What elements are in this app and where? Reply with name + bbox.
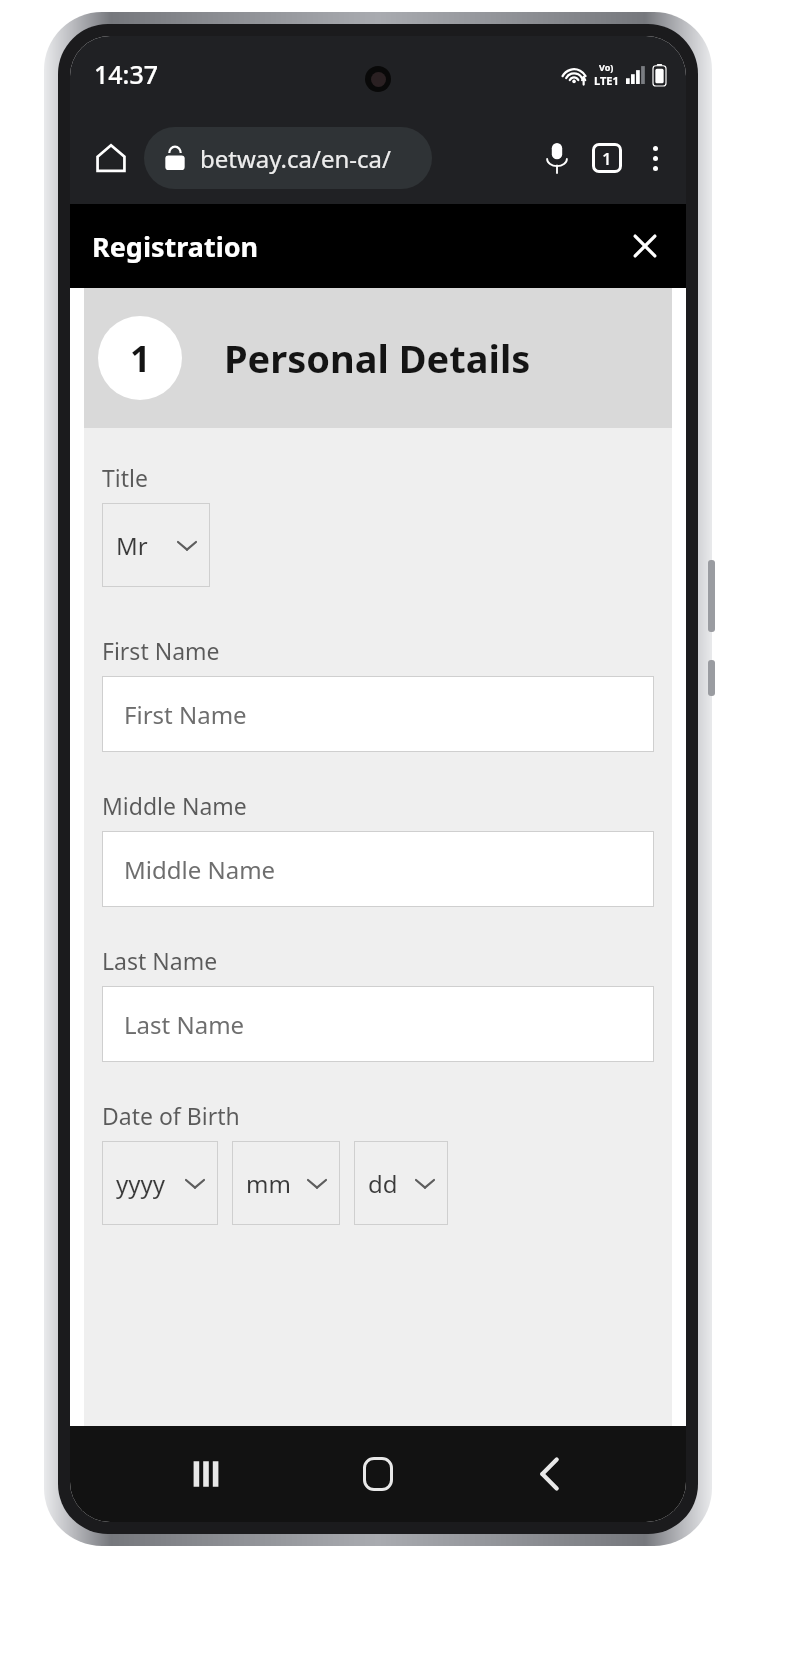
button[interactable]: Home (84, 131, 138, 185)
staticText: First Name (102, 635, 220, 666)
staticText: Registration (92, 228, 259, 265)
staticText: Vo) (599, 61, 614, 73)
button[interactable]: Mr (102, 503, 210, 587)
staticText: First Name (124, 698, 247, 731)
button[interactable]: Last Name (102, 986, 654, 1062)
staticText: mm (246, 1167, 291, 1200)
button[interactable]: mm (232, 1141, 340, 1225)
button[interactable]: Middle Name (102, 831, 654, 907)
staticText: Date of Birth (102, 1100, 240, 1131)
button[interactable]: yyyy (102, 1141, 218, 1225)
staticText: Middle Name (124, 853, 276, 886)
staticText: betway.ca/en-ca/ (200, 142, 391, 175)
button[interactable]: Back (514, 1438, 586, 1510)
button[interactable]: Home (342, 1438, 414, 1510)
staticText: Title (102, 462, 148, 493)
staticText: Mr (116, 529, 148, 562)
button[interactable]: Tabs (582, 133, 632, 183)
button[interactable]: Recents (170, 1438, 242, 1510)
button[interactable]: dd (354, 1141, 448, 1225)
button[interactable]: More options (632, 135, 678, 181)
button[interactable]: First Name (102, 676, 654, 752)
staticText: 1 (602, 147, 612, 170)
staticText: yyyy (116, 1167, 165, 1200)
button[interactable]: Voice search (532, 133, 582, 183)
staticText: Middle Name (102, 790, 247, 821)
staticText: Personal Details (224, 332, 531, 384)
button[interactable]: Close (622, 223, 668, 269)
staticText: Last Name (124, 1008, 245, 1041)
staticText: LTE1 (594, 73, 619, 88)
button[interactable]: betway.ca/en-ca/ (144, 127, 432, 189)
staticText: 1 (130, 334, 151, 383)
staticText: Last Name (102, 945, 218, 976)
staticText: dd (368, 1167, 398, 1200)
staticText: 14:37 (94, 57, 159, 91)
